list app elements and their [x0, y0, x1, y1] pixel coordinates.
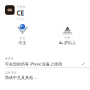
staticText: 语言 — [19, 36, 25, 40]
staticText: 年龄 — [64, 36, 70, 39]
staticText: 开发商 — [17, 5, 26, 8]
staticText: 兼容性 — [5, 57, 14, 60]
staticText: ✓ — [81, 61, 85, 67]
staticText: 支持语言 — [5, 71, 17, 74]
staticText: Corp. — [17, 17, 25, 21]
staticText: 可在您的所有 iPhone 设备上使用 — [5, 61, 62, 66]
staticText: 4+ 岁以上 — [59, 40, 76, 45]
staticText: CE — [17, 9, 25, 17]
staticText: 中文 — [18, 40, 26, 45]
staticText: 简体中文及其他 … — [5, 75, 37, 80]
